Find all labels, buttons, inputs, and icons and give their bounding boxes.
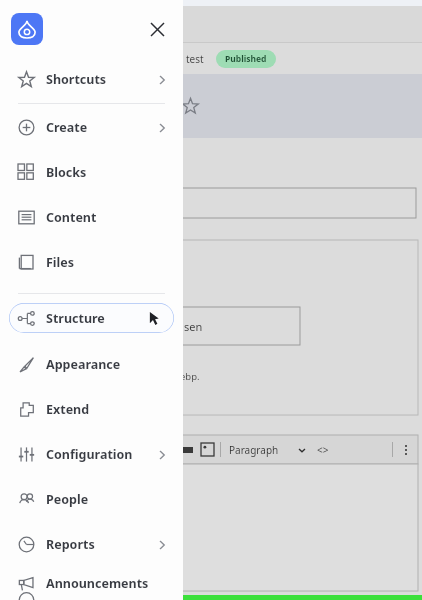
staticText: Create bbox=[46, 119, 88, 136]
staticText: Published bbox=[225, 53, 267, 65]
staticText: Extend bbox=[46, 401, 90, 418]
button[interactable]: Blocks bbox=[0, 150, 183, 195]
staticText: st bbox=[150, 89, 174, 123]
button[interactable]: Drupal home bbox=[11, 13, 43, 45]
staticText: test bbox=[186, 52, 204, 66]
button[interactable]: Appearance bbox=[0, 342, 183, 387]
button[interactable]: Structure bbox=[9, 303, 174, 333]
button[interactable]: Shortcuts bbox=[0, 57, 183, 102]
button[interactable]: Configuration bbox=[0, 432, 183, 477]
staticText: Appearance bbox=[46, 356, 121, 373]
staticText: People bbox=[46, 491, 89, 508]
staticText: sen bbox=[184, 319, 203, 334]
staticText: Files bbox=[46, 254, 75, 271]
staticText: Content bbox=[46, 209, 97, 226]
staticText: Announcements bbox=[46, 575, 149, 592]
button[interactable]: Content bbox=[0, 195, 183, 240]
staticText: Structure bbox=[46, 310, 105, 327]
button[interactable]: Reports bbox=[0, 522, 183, 567]
button[interactable]: Extend bbox=[0, 387, 183, 432]
staticText: <> bbox=[317, 443, 329, 457]
button[interactable]: People bbox=[0, 477, 183, 522]
button[interactable]: Announcements bbox=[0, 567, 183, 600]
staticText: Shortcuts bbox=[46, 71, 107, 88]
staticText: Reports bbox=[46, 536, 95, 553]
button[interactable]: Files bbox=[0, 240, 183, 285]
staticText: Configuration bbox=[46, 446, 133, 463]
staticText: Blocks bbox=[46, 164, 87, 181]
staticText: Paragraph bbox=[229, 443, 279, 457]
button[interactable]: Close menu bbox=[142, 14, 172, 44]
button[interactable]: Create bbox=[0, 105, 183, 150]
staticText: ebp. bbox=[180, 370, 200, 383]
